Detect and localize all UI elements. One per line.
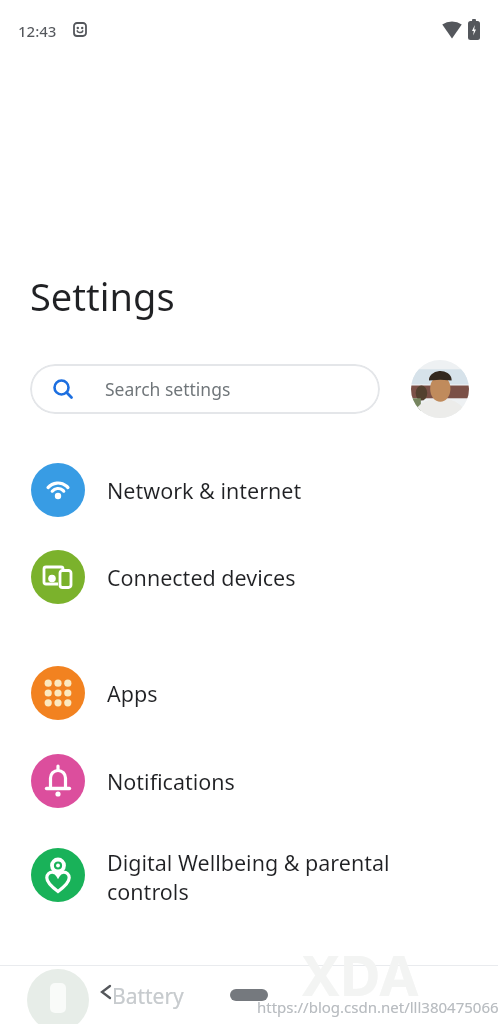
staticText: Digital Wellbeing & parental <box>107 848 390 877</box>
button[interactable]: Apps <box>0 666 498 720</box>
button[interactable]: Connected devices <box>0 550 498 604</box>
button[interactable] <box>230 989 268 1001</box>
staticText: Connected devices <box>107 563 296 592</box>
button[interactable]: Notifications <box>0 754 498 808</box>
button[interactable] <box>27 969 89 1024</box>
staticText: https://blog.csdn.net/lll380475066 <box>257 997 498 1017</box>
button[interactable] <box>411 360 469 418</box>
staticText: Settings <box>30 270 175 322</box>
staticText: controls <box>107 877 189 902</box>
button[interactable]: Search settings <box>30 364 380 414</box>
button[interactable]: Digital Wellbeing & parental <box>0 848 498 902</box>
staticText: XDA <box>302 936 419 1012</box>
staticText: Notifications <box>107 767 235 796</box>
staticText: Battery <box>112 982 184 1011</box>
staticText: Search settings <box>105 377 231 401</box>
staticText: Network & internet <box>107 476 302 505</box>
staticText: 12:43 <box>18 21 57 41</box>
staticText: Apps <box>107 679 158 708</box>
button[interactable]: Network & internet <box>0 463 498 517</box>
